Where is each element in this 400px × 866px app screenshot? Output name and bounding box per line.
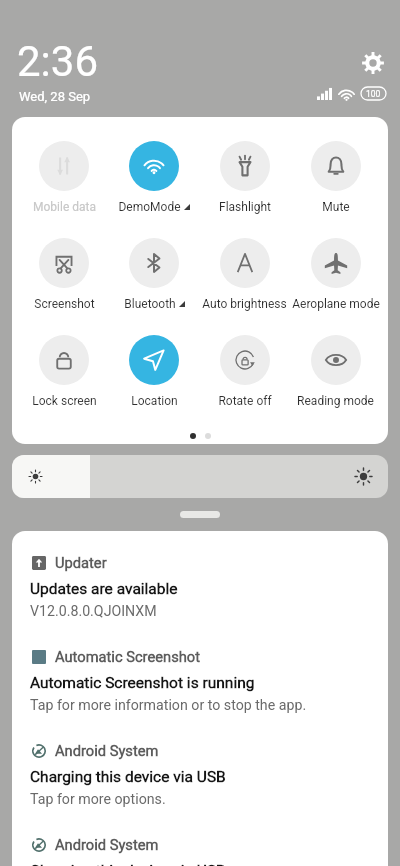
button[interactable]: Location (109, 335, 199, 408)
button[interactable]: Flashlight (199, 141, 290, 214)
staticText: Charging this device via USB (30, 768, 226, 786)
staticText: Updates are available (30, 580, 178, 598)
staticText: Flashlight (219, 200, 271, 214)
staticText: Android System (55, 742, 159, 759)
staticText: Lock screen (32, 394, 97, 408)
button[interactable]: Bluetooth (109, 238, 199, 311)
staticText: Mobile data (33, 200, 96, 214)
button[interactable]: Mobile data (19, 141, 109, 214)
staticText: Tap for more information or to stop the … (30, 697, 307, 714)
staticText: 2:36 (17, 37, 98, 86)
staticText: Automatic Screenshot (55, 648, 201, 665)
button[interactable]: Rotate off (199, 335, 290, 408)
staticText: Wed, 28 Sep (19, 89, 91, 104)
staticText: DemoMode (118, 200, 181, 214)
staticText: Auto brightness (202, 297, 287, 311)
button[interactable]: Lock screen (19, 335, 109, 408)
button[interactable]: Reading mode (290, 335, 381, 408)
button[interactable]: Screenshot (19, 238, 109, 311)
button[interactable]: Settings (362, 52, 384, 74)
button[interactable]: Updater (30, 554, 370, 620)
button[interactable]: Auto brightness (199, 238, 290, 311)
staticText: V12.0.8.0.QJOINXM (30, 603, 157, 620)
staticText: Rotate off (218, 394, 272, 408)
staticText: Screenshot (34, 297, 95, 311)
button[interactable]: Mute (290, 141, 381, 214)
staticText: Aeroplane mode (292, 297, 380, 311)
staticText: Location (131, 394, 178, 408)
button[interactable]: Android System (30, 836, 370, 866)
button[interactable]: Brightness (12, 455, 388, 498)
button[interactable]: Automatic Screenshot (30, 648, 370, 714)
staticText: 100 (366, 89, 381, 99)
staticText: Automatic Screenshot is running (30, 674, 255, 692)
staticText: Tap for more options. (30, 791, 166, 808)
staticText: Reading mode (297, 394, 374, 408)
button[interactable]: Android System (30, 742, 370, 808)
staticText: Updater (55, 554, 107, 571)
staticText: Bluetooth (124, 297, 176, 311)
staticText: Mute (322, 200, 350, 214)
button[interactable]: Aeroplane mode (290, 238, 381, 311)
button[interactable]: DemoMode (109, 141, 199, 214)
staticText: Android System (55, 836, 159, 853)
staticText: Charging this device via USB (30, 862, 226, 866)
